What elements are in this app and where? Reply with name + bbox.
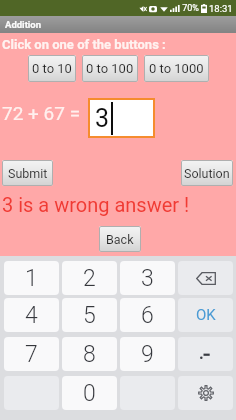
button[interactable]: Solution [181,160,233,186]
button[interactable]: 3 [120,261,175,295]
button[interactable]: Submit [2,160,53,186]
button[interactable]: 3 [88,98,155,138]
button[interactable]: 0 to 1000 [144,55,209,82]
staticText: 2 [83,265,96,292]
button[interactable]: 4 [4,298,59,332]
staticText: OK [196,306,216,324]
button[interactable]: 9 [120,337,175,371]
button[interactable]: Backspace [178,261,233,295]
button[interactable]: 0 [62,376,117,410]
button[interactable]: Settings [178,376,233,410]
button[interactable]: 6 [120,298,175,332]
button[interactable]: 8 [62,337,117,371]
staticText: 1 [25,265,38,292]
staticText: 72 + 67 = [2,102,81,124]
staticText: 0 to 100 [86,61,134,76]
staticText: Submit [8,166,48,181]
button[interactable]: 2 [62,261,117,295]
staticText: 9 [141,341,154,368]
button[interactable]: OK [178,298,233,332]
staticText: Back [106,232,134,247]
staticText: 0 [83,380,96,407]
staticText: 5 [83,302,96,329]
button[interactable]: 0 to 10 [28,55,76,82]
staticText: Solution [184,166,230,181]
button[interactable]: Dot and dash [178,337,233,371]
button[interactable]: 5 [62,298,117,332]
button[interactable]: 1 [4,261,59,295]
staticText: 7 [25,341,38,368]
button[interactable]: Back [99,226,141,252]
button[interactable]: 0 to 100 [82,55,138,82]
staticText: 0 to 1000 [149,61,204,76]
staticText: 6 [141,302,154,329]
staticText: 4 [25,302,38,329]
staticText: 3 is a wrong answer ! [2,193,190,216]
staticText: 3 [141,265,154,292]
staticText: 8 [83,341,96,368]
staticText: Addition [5,19,42,30]
staticText: Click on one of the buttons : [2,37,166,52]
button[interactable]: 7 [4,337,59,371]
staticText: 3 [95,104,110,133]
staticText: 0 to 10 [32,61,72,76]
staticText: 18:31 [209,3,233,14]
staticText: 70% [180,3,199,14]
